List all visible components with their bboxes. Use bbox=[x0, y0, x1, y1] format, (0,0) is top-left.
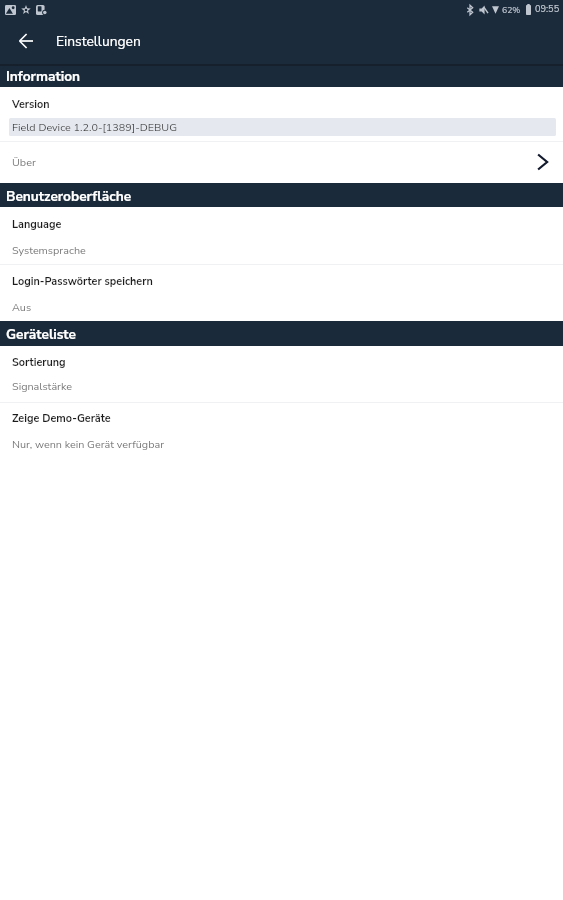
staticText: Information bbox=[6, 67, 81, 86]
staticText: Sortierung bbox=[12, 355, 66, 370]
staticText: Einstellungen bbox=[56, 32, 141, 51]
staticText: Version bbox=[12, 97, 50, 112]
staticText: Benutzeroberfläche bbox=[6, 187, 132, 206]
staticText: Aus bbox=[12, 300, 32, 315]
button[interactable]: Login-Passwörter speichern bbox=[0, 265, 563, 295]
button[interactable]: Zeige Demo-Geräte bbox=[0, 403, 563, 434]
staticText: Login-Passwörter speichern bbox=[12, 274, 153, 289]
button[interactable]: Language bbox=[0, 207, 563, 237]
staticText: Signalstärke bbox=[12, 379, 72, 394]
button[interactable]: Aus bbox=[0, 295, 563, 321]
staticText: Zeige Demo-Geräte bbox=[12, 411, 111, 426]
staticText: Language bbox=[12, 217, 62, 232]
staticText: Nur, wenn kein Gerät verfügbar bbox=[12, 437, 165, 452]
staticText: 62% bbox=[502, 4, 521, 16]
button[interactable]: Signalstärke bbox=[0, 376, 563, 402]
staticText: 09:55 bbox=[535, 3, 560, 16]
button[interactable]: Systemsprache bbox=[0, 237, 563, 264]
staticText: Über bbox=[12, 155, 36, 170]
button[interactable]: Field Device 1.2.0-[1389]-DEBUG bbox=[9, 118, 556, 136]
staticText: Geräteliste bbox=[6, 325, 76, 344]
button[interactable]: Nur, wenn kein Gerät verfügbar bbox=[0, 434, 563, 461]
staticText: Field Device 1.2.0-[1389]-DEBUG bbox=[12, 120, 178, 135]
button[interactable]: Sortierung bbox=[0, 346, 563, 376]
staticText: Systemsprache bbox=[12, 243, 86, 258]
button[interactable]: Über bbox=[0, 142, 563, 183]
button[interactable]: Version bbox=[0, 87, 563, 118]
button[interactable]: Back bbox=[12, 27, 40, 55]
